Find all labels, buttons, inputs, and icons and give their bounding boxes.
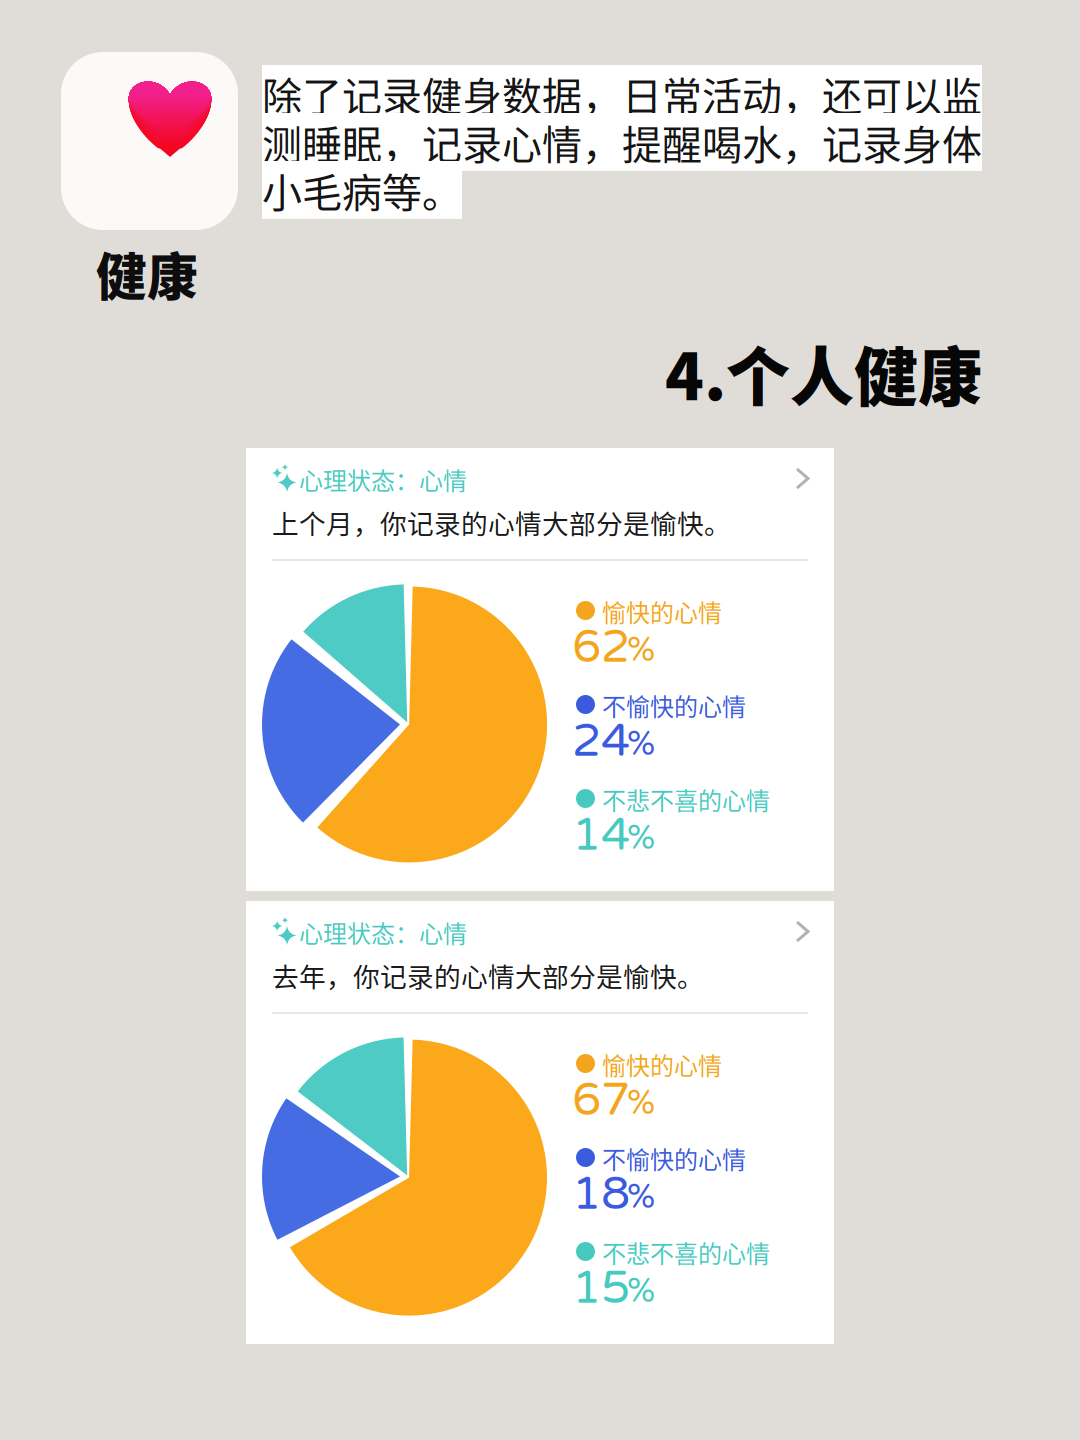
- staticText: 不悲不喜的心情: [602, 782, 770, 817]
- staticText: 健康: [96, 237, 198, 310]
- staticText: 愉快的心情: [602, 1047, 722, 1082]
- staticText: %: [627, 1270, 655, 1312]
- staticText: 心理状态：心情: [299, 915, 467, 950]
- staticText: %: [627, 817, 655, 859]
- button[interactable]: 心理状态：心情: [246, 901, 834, 957]
- staticText: 小毛病等。: [262, 161, 462, 219]
- staticText: 不愉快的心情: [602, 1141, 746, 1176]
- staticText: 测睡眠，记录心情，提醒喝水，记录身体: [262, 113, 982, 171]
- button[interactable]: 心理状态：心情: [246, 448, 834, 504]
- staticText: 不愉快的心情: [602, 688, 746, 723]
- staticText: %: [627, 1176, 655, 1218]
- staticText: %: [627, 1082, 655, 1124]
- staticText: 上个月，你记录的心情大部分是愉快。: [272, 503, 731, 542]
- staticText: 4.个人健康: [665, 326, 982, 419]
- staticText: 除了记录健身数据，日常活动，还可以监: [262, 65, 982, 123]
- staticText: 15: [572, 1260, 630, 1316]
- staticText: 14: [572, 807, 630, 863]
- staticText: 去年，你记录的心情大部分是愉快。: [272, 956, 704, 995]
- staticText: 愉快的心情: [602, 594, 722, 629]
- staticText: 不悲不喜的心情: [602, 1235, 770, 1270]
- staticText: 62: [572, 619, 630, 675]
- staticText: %: [627, 629, 655, 671]
- staticText: 67: [572, 1072, 630, 1128]
- staticText: 24: [572, 713, 630, 769]
- staticText: 心理状态：心情: [299, 462, 467, 497]
- staticText: %: [627, 723, 655, 765]
- staticText: 18: [572, 1166, 630, 1222]
